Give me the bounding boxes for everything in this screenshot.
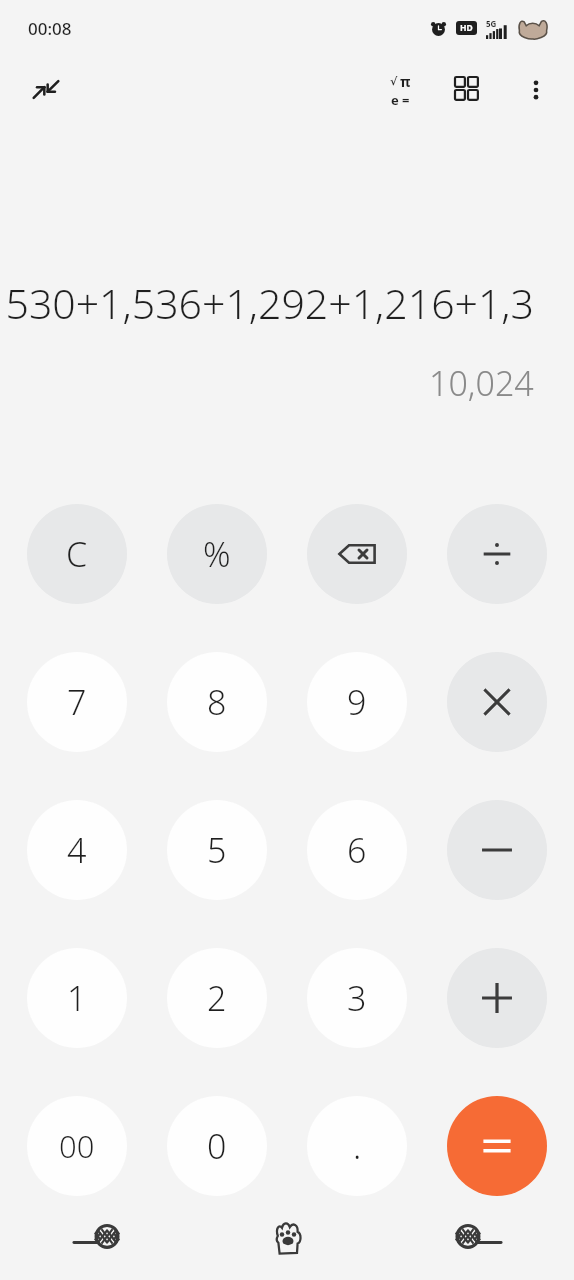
button[interactable]: Scientific (376, 66, 424, 114)
staticText: 0 (207, 1123, 227, 1169)
staticText: C (66, 531, 88, 577)
staticText: 6 (347, 827, 367, 873)
button[interactable]: 5 (167, 800, 267, 900)
button[interactable]: Subtract (447, 800, 547, 900)
button[interactable]: 2 (167, 948, 267, 1048)
staticText: 4 (67, 827, 87, 873)
button[interactable]: Multiply (447, 652, 547, 752)
button[interactable]: Converter (444, 66, 492, 114)
staticText: . (353, 1123, 362, 1169)
button[interactable]: 1 (27, 948, 127, 1048)
button[interactable]: 0 (167, 1096, 267, 1196)
staticText: 3 (347, 975, 367, 1021)
button[interactable]: Collapse (22, 66, 70, 114)
staticText: 5 (207, 827, 227, 873)
button[interactable]: Divide (447, 504, 547, 604)
button[interactable]: 6 (307, 800, 407, 900)
staticText: e (391, 91, 399, 109)
button[interactable]: 9 (307, 652, 407, 752)
staticText: 7 (67, 679, 87, 725)
button[interactable]: 8 (167, 652, 267, 752)
button[interactable]: 7 (27, 652, 127, 752)
staticText: 5G (486, 18, 497, 29)
button[interactable]: 00 (27, 1096, 127, 1196)
staticText: 9 (347, 679, 367, 725)
staticText: 00 (59, 1125, 95, 1167)
button[interactable]: Add (447, 948, 547, 1048)
button[interactable]: Equals (447, 1096, 547, 1196)
button[interactable]: 3 (307, 948, 407, 1048)
button[interactable]: Backspace (307, 504, 407, 604)
button[interactable]: C (27, 504, 127, 604)
button[interactable]: Recents (0, 1196, 192, 1280)
staticText: √ (390, 75, 398, 88)
button[interactable]: % (167, 504, 267, 604)
staticText: 8 (207, 679, 227, 725)
staticText: π (400, 72, 411, 91)
button[interactable]: More options (512, 66, 560, 114)
staticText: = (402, 91, 410, 109)
button[interactable]: Home (192, 1196, 383, 1280)
staticText: 10,024 (429, 360, 534, 406)
button[interactable]: 4 (27, 800, 127, 900)
staticText: 530+1,536+1,292+1,216+1,392 (0, 275, 534, 331)
staticText: 00:08 (28, 17, 72, 40)
staticText: 1 (67, 975, 87, 1021)
staticText: HD (460, 22, 473, 34)
button[interactable]: Back (383, 1196, 574, 1280)
staticText: % (203, 531, 231, 577)
staticText: 2 (207, 975, 227, 1021)
button[interactable]: . (307, 1096, 407, 1196)
